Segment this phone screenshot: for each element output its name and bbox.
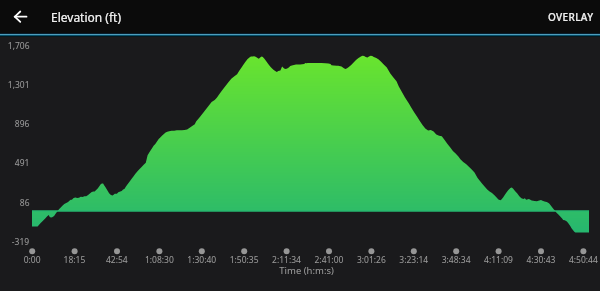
button[interactable]: OVERLAY — [538, 4, 600, 30]
staticText: OVERLAY — [548, 10, 594, 24]
staticText: Elevation (ft) — [51, 9, 122, 25]
button[interactable]: Back — [9, 5, 33, 29]
